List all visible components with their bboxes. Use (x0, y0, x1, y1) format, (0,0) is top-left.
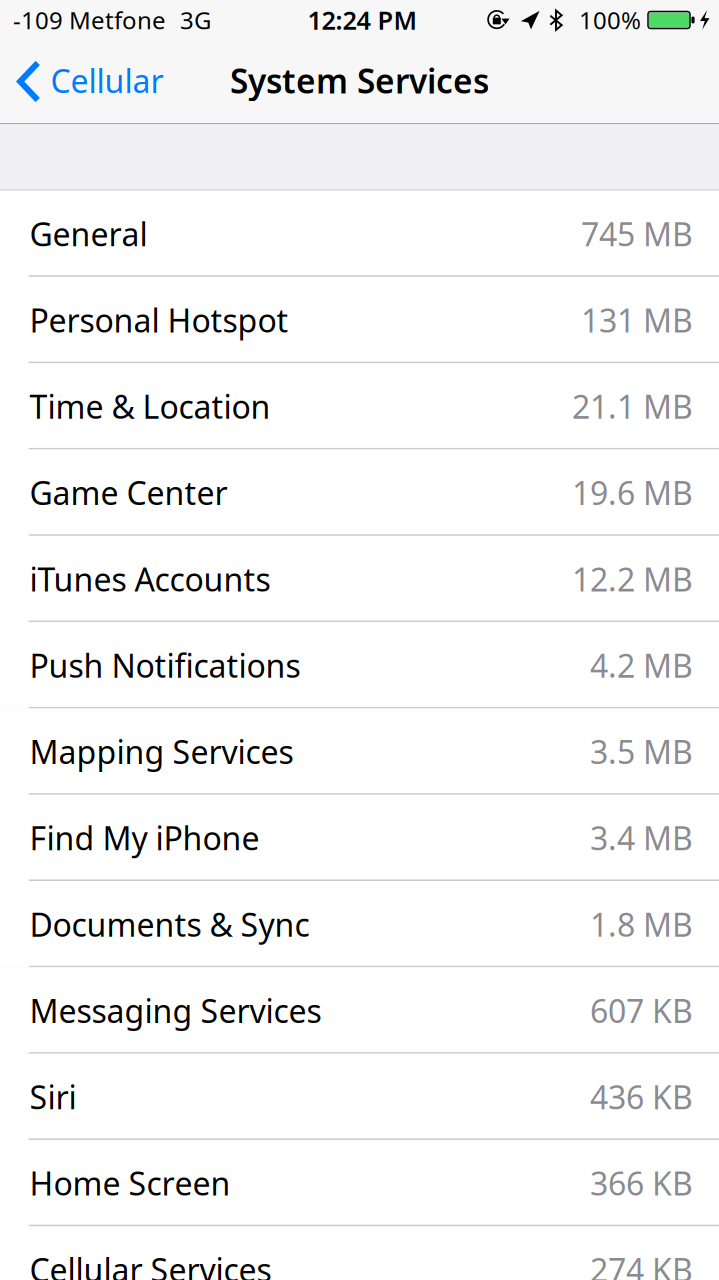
button[interactable]: Documents & Sync (0, 881, 719, 967)
staticText: 19.6 MB (572, 471, 693, 514)
staticText: Messaging Services (29, 989, 321, 1032)
staticText: 436 KB (590, 1076, 693, 1118)
staticText: Cellular Services (29, 1248, 271, 1280)
staticText: 3.4 MB (590, 817, 693, 859)
button[interactable]: Push Notifications (0, 622, 719, 708)
button[interactable]: Mapping Services (0, 708, 719, 795)
staticText: Siri (29, 1076, 76, 1118)
staticText: 12.2 MB (572, 558, 693, 600)
staticText: 21.1 MB (572, 385, 693, 428)
staticText: 3G (180, 4, 211, 36)
staticText: Home Screen (29, 1162, 230, 1204)
button[interactable]: Home Screen (0, 1140, 719, 1226)
staticText: Documents & Sync (29, 903, 309, 945)
button[interactable]: Siri (0, 1054, 719, 1140)
button[interactable]: iTunes Accounts (0, 536, 719, 622)
button[interactable]: Time & Location (0, 363, 719, 449)
button[interactable]: Cellular Services (0, 1226, 719, 1280)
button[interactable]: General (0, 191, 719, 277)
staticText: Personal Hotspot (29, 299, 288, 341)
staticText: 12:24 PM (307, 3, 417, 37)
staticText: General (29, 212, 147, 255)
staticText: 131 MB (581, 299, 693, 341)
staticText: Push Notifications (29, 644, 300, 687)
button[interactable]: Game Center (0, 449, 719, 536)
staticText: 1.8 MB (590, 903, 693, 945)
staticText: 100% (579, 4, 641, 36)
staticText: 607 KB (590, 989, 693, 1032)
staticText: 4.2 MB (590, 644, 693, 687)
button[interactable]: Messaging Services (0, 967, 719, 1054)
button[interactable]: Find My iPhone (0, 795, 719, 881)
staticText: System Services (230, 58, 489, 103)
staticText: 3.5 MB (590, 730, 693, 773)
staticText: 274 KB (590, 1248, 693, 1280)
staticText: iTunes Accounts (29, 558, 270, 600)
staticText: 366 KB (590, 1162, 693, 1204)
staticText: Find My iPhone (29, 817, 259, 859)
button[interactable]: Personal Hotspot (0, 277, 719, 363)
staticText: -109 Metfone (13, 4, 166, 36)
staticText: Game Center (29, 471, 227, 514)
button[interactable]: Cellular (0, 40, 175, 123)
staticText: Time & Location (29, 385, 270, 428)
staticText: Cellular (50, 59, 163, 102)
staticText: Mapping Services (29, 730, 293, 773)
staticText: 745 MB (581, 212, 693, 255)
